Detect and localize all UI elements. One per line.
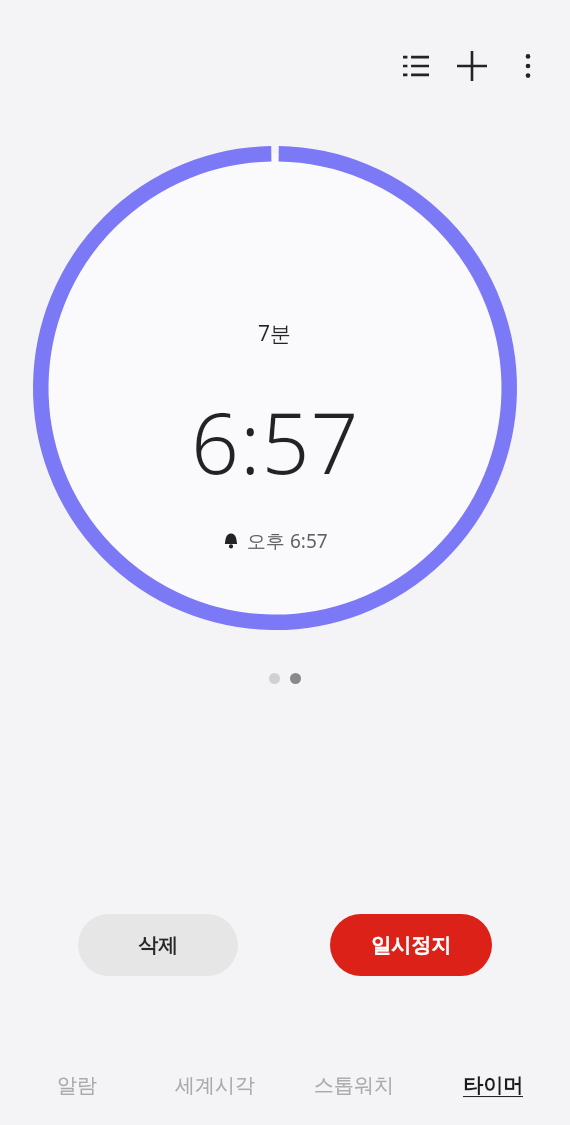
button[interactable]: Timer list bbox=[388, 38, 444, 94]
staticText: 오후 6:57 bbox=[247, 528, 328, 554]
button[interactable]: 세계시각 bbox=[146, 1051, 284, 1119]
staticText: 7분 bbox=[258, 319, 292, 348]
button[interactable]: Page 1 bbox=[269, 673, 280, 684]
button[interactable]: Add timer bbox=[444, 38, 500, 94]
button[interactable]: 스톱워치 bbox=[284, 1051, 423, 1119]
staticText: 삭제 bbox=[138, 933, 178, 958]
button[interactable]: 삭제 bbox=[78, 914, 238, 976]
button[interactable]: 일시정지 bbox=[330, 914, 492, 976]
staticText: 세계시각 bbox=[175, 1073, 255, 1098]
button[interactable]: More options bbox=[500, 38, 556, 94]
staticText: 6:57 bbox=[191, 384, 360, 498]
button[interactable]: 타이머 bbox=[423, 1051, 562, 1119]
button[interactable]: 알람 bbox=[8, 1051, 146, 1119]
staticText: 스톱워치 bbox=[314, 1073, 394, 1098]
staticText: 타이머 bbox=[463, 1073, 523, 1098]
staticText: 알람 bbox=[57, 1073, 97, 1098]
button[interactable]: Page 2 bbox=[290, 673, 301, 684]
staticText: 일시정지 bbox=[371, 933, 451, 958]
